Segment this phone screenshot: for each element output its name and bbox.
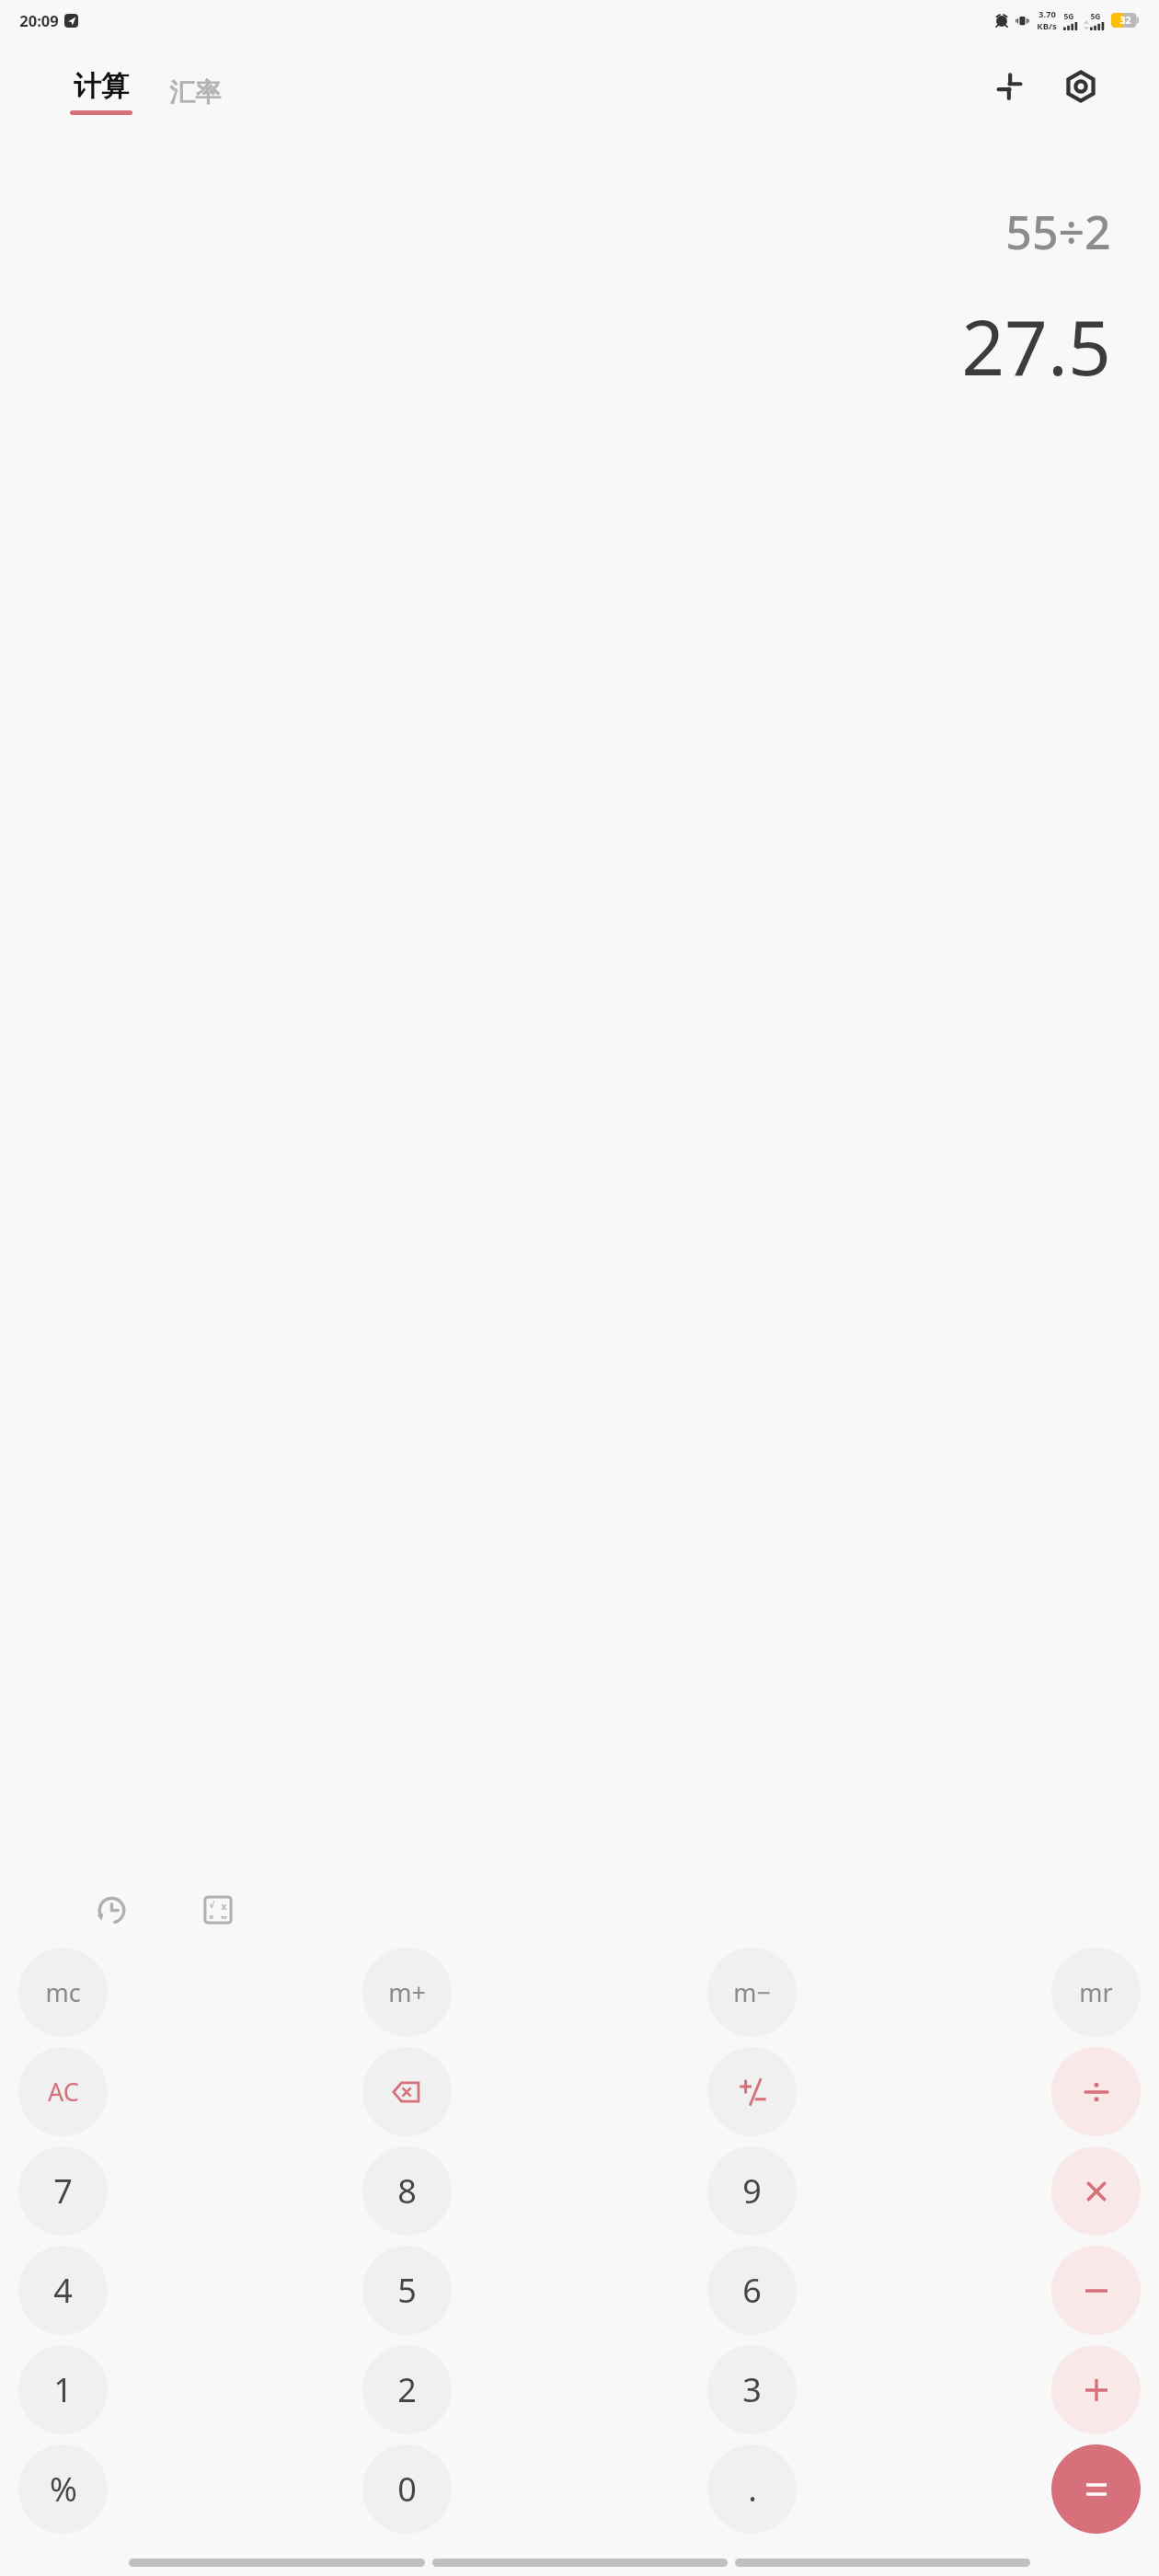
button[interactable]: Scientific mode: [191, 1883, 245, 1937]
staticText: X: [221, 1901, 227, 1912]
staticText: m+: [388, 1975, 426, 2009]
button[interactable]: Settings: [1056, 62, 1106, 111]
button[interactable]: Collapse: [984, 62, 1034, 111]
staticText: 5G: [1090, 11, 1101, 22]
button[interactable]: History: [85, 1883, 138, 1937]
button[interactable]: 4: [18, 2246, 108, 2335]
staticText: π: [221, 1912, 227, 1919]
staticText: AC: [48, 2075, 79, 2109]
button[interactable]: 8: [362, 2146, 452, 2236]
staticText: 32: [1119, 14, 1131, 27]
button[interactable]: mr: [1051, 1948, 1141, 2037]
button[interactable]: 汇率: [167, 73, 223, 112]
button[interactable]: Multiply: [1051, 2146, 1141, 2236]
button[interactable]: 2: [362, 2345, 452, 2434]
staticText: 4: [53, 2268, 73, 2313]
button[interactable]: m+: [362, 1948, 452, 2037]
staticText: 6: [742, 2268, 762, 2313]
staticText: 5G: [1063, 11, 1074, 22]
staticText: 3.70: [1039, 8, 1056, 20]
button[interactable]: AC: [18, 2047, 108, 2136]
staticText: 2: [397, 2367, 417, 2412]
staticText: m−: [733, 1975, 771, 2009]
staticText: %: [50, 2467, 77, 2512]
staticText: √: [209, 1901, 215, 1910]
staticText: 0: [397, 2467, 417, 2512]
staticText: 3: [742, 2367, 762, 2412]
button[interactable]: Divide: [1051, 2047, 1141, 2136]
button[interactable]: Minus: [1051, 2246, 1141, 2335]
button[interactable]: Plus: [1051, 2345, 1141, 2434]
button[interactable]: Navigation: [129, 2559, 425, 2567]
staticText: mr: [1079, 1975, 1113, 2009]
button[interactable]: Navigation: [432, 2559, 728, 2567]
staticText: mc: [45, 1975, 81, 2009]
staticText: 8: [397, 2168, 417, 2214]
staticText: 汇率: [169, 76, 221, 109]
button[interactable]: 计算: [68, 69, 134, 115]
staticText: 1: [53, 2367, 73, 2412]
staticText: E: [209, 1912, 214, 1919]
button[interactable]: Navigation: [735, 2559, 1030, 2567]
staticText: 5: [397, 2268, 417, 2313]
staticText: 55÷2: [1005, 201, 1111, 263]
button[interactable]: Backspace: [362, 2047, 452, 2136]
button[interactable]: Equals: [1051, 2444, 1141, 2534]
button[interactable]: 3: [707, 2345, 797, 2434]
button[interactable]: 0: [362, 2444, 452, 2534]
staticText: 计算: [74, 69, 129, 104]
button[interactable]: 6: [707, 2246, 797, 2335]
button[interactable]: 7: [18, 2146, 108, 2236]
button[interactable]: .: [707, 2444, 797, 2534]
staticText: 7: [53, 2168, 73, 2214]
button[interactable]: mc: [18, 1948, 108, 2037]
staticText: .: [748, 2467, 757, 2512]
button[interactable]: 9: [707, 2146, 797, 2236]
button[interactable]: 1: [18, 2345, 108, 2434]
staticText: 9: [742, 2168, 762, 2214]
staticText: 20:09: [19, 10, 59, 30]
button[interactable]: %: [18, 2444, 108, 2534]
button[interactable]: 5: [362, 2246, 452, 2335]
button[interactable]: m−: [707, 1948, 797, 2037]
button[interactable]: Plus minus: [707, 2047, 797, 2136]
staticText: KB/s: [1037, 20, 1057, 32]
staticText: 27.5: [961, 294, 1111, 397]
